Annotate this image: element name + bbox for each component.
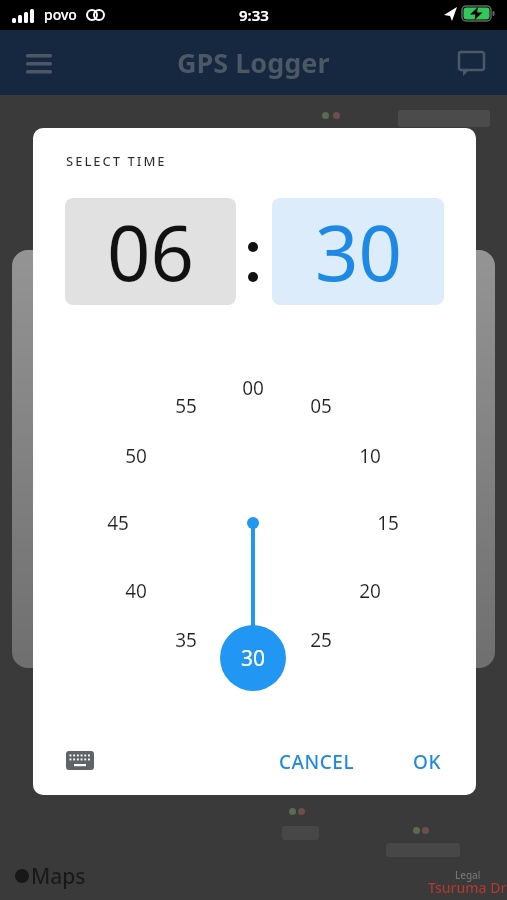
staticText: 40	[125, 578, 147, 604]
staticText: Maps	[31, 862, 86, 891]
button[interactable]	[53, 738, 107, 782]
button[interactable]: OK	[399, 742, 455, 782]
button[interactable]: CANCEL	[244, 742, 390, 782]
button[interactable]: 25	[299, 627, 343, 653]
button[interactable]: 40	[114, 578, 158, 604]
button[interactable]: 15	[366, 510, 410, 536]
staticText: povo	[44, 5, 77, 24]
staticText: 55	[175, 393, 197, 419]
staticText: 05	[310, 393, 332, 419]
staticText: 10	[359, 443, 381, 469]
button[interactable]: 55	[164, 393, 208, 419]
button[interactable]: 30	[272, 198, 444, 305]
staticText: 00	[242, 375, 264, 401]
button[interactable]: 10	[348, 443, 392, 469]
button[interactable]: 20	[348, 578, 392, 604]
staticText: Legal	[455, 868, 481, 882]
button[interactable]: 45	[96, 510, 140, 536]
staticText: GPS Logger	[177, 44, 330, 81]
button[interactable]	[16, 46, 62, 82]
staticText: 50	[125, 443, 147, 469]
staticText: 30	[315, 200, 402, 304]
button[interactable]: 35	[164, 627, 208, 653]
staticText: 35	[175, 627, 197, 653]
button[interactable]: 00	[231, 375, 275, 401]
button[interactable]: 06	[65, 198, 236, 305]
staticText: CANCEL	[279, 749, 355, 775]
button[interactable]: 05	[299, 393, 343, 419]
staticText: OK	[413, 749, 441, 775]
staticText: 20	[359, 578, 381, 604]
button[interactable]: 50	[114, 443, 158, 469]
button[interactable]: 30	[220, 625, 286, 691]
staticText: 25	[310, 627, 332, 653]
staticText: 9:33	[239, 5, 269, 25]
staticText: SELECT TIME	[66, 152, 167, 170]
staticText: 45	[107, 510, 129, 536]
staticText: 15	[377, 510, 399, 536]
staticText: 30	[241, 644, 266, 673]
staticText: 06	[107, 200, 194, 304]
staticText: Tsuruma Dr	[428, 878, 507, 897]
button[interactable]	[451, 44, 491, 84]
